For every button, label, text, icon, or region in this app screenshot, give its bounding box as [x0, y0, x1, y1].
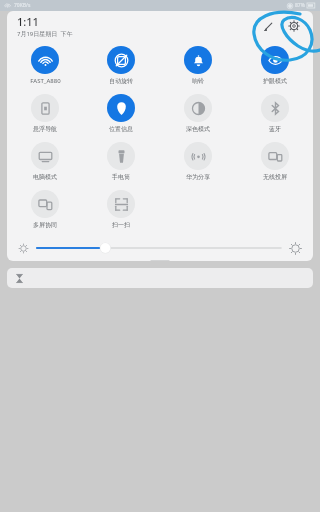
other: Low brightness: [19, 244, 28, 253]
button[interactable]: Hourglass notification: [7, 268, 313, 288]
button[interactable]: 位置信息: [83, 91, 159, 139]
button[interactable]: 扫一扫: [83, 187, 159, 235]
staticText: 多屏协同: [33, 221, 57, 229]
button[interactable]: 响铃: [159, 43, 236, 91]
button[interactable]: 自动旋转: [83, 43, 159, 91]
staticText: 响铃: [192, 77, 204, 85]
staticText: 1:11: [17, 14, 39, 29]
button[interactable]: 蓝牙: [236, 91, 313, 139]
staticText: 悬浮导航: [33, 125, 57, 133]
button[interactable]: 手电筒: [83, 139, 159, 187]
button[interactable]: 无线投屏: [236, 139, 313, 187]
button[interactable]: 多屏协同: [7, 187, 83, 235]
button[interactable]: 华为分享: [159, 139, 236, 187]
staticText: 扫一扫: [112, 221, 130, 229]
button[interactable]: Settings: [283, 15, 305, 37]
staticText: 华为分享: [186, 173, 210, 181]
button[interactable]: 深色模式: [159, 91, 236, 139]
button[interactable]: Edit: [257, 15, 279, 37]
staticText: 位置信息: [109, 125, 133, 133]
button[interactable]: FAST_A880: [7, 43, 83, 91]
staticText: 深色模式: [186, 125, 210, 133]
button[interactable]: Low brightness: [19, 235, 301, 261]
staticText: 无线投屏: [263, 173, 287, 181]
staticText: 护眼模式: [263, 77, 287, 85]
staticText: 手电筒: [112, 173, 130, 181]
button[interactable]: 电脑模式: [7, 139, 83, 187]
staticText: 7月19日星期日 下午: [17, 30, 73, 38]
other: Hourglass notification: [15, 274, 24, 283]
staticText: 70KB/s: [14, 2, 31, 9]
other: High brightness: [290, 243, 301, 254]
button[interactable]: 悬浮导航: [7, 91, 83, 139]
staticText: 87%: [295, 2, 305, 9]
staticText: 电脑模式: [33, 173, 57, 181]
staticText: 自动旋转: [109, 77, 133, 85]
button[interactable]: 护眼模式: [236, 43, 313, 91]
staticText: 蓝牙: [269, 125, 281, 133]
staticText: FAST_A880: [30, 77, 61, 85]
